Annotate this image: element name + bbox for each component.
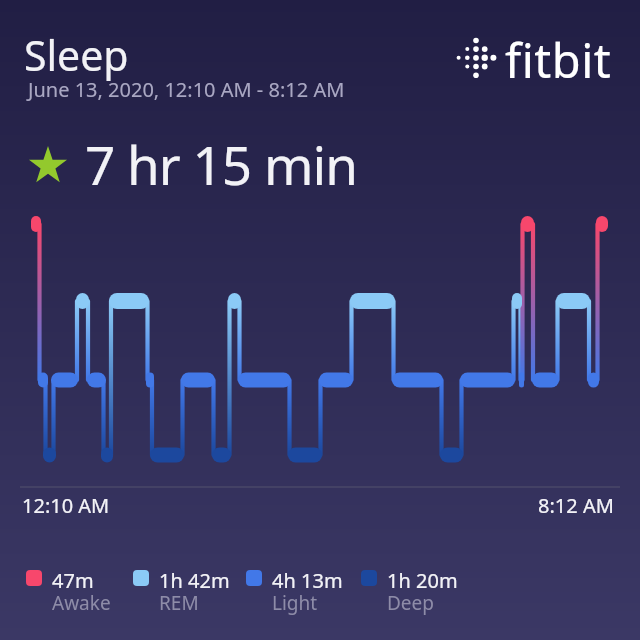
staticText: REM xyxy=(159,590,199,616)
button[interactable]: 1h 20m xyxy=(361,566,466,614)
button[interactable]: 47m xyxy=(26,566,131,614)
staticText: Sleep xyxy=(24,27,129,83)
staticText: 12:10 AM xyxy=(22,492,110,519)
button[interactable]: 4h 13m xyxy=(246,566,351,614)
staticText: Light xyxy=(272,590,318,616)
staticText: 7 hr 15 min xyxy=(85,128,357,194)
staticText: fitbit xyxy=(505,28,612,88)
staticText: 1h 20m xyxy=(387,567,458,594)
staticText: 8:12 AM xyxy=(538,492,614,519)
staticText: 47m xyxy=(52,567,94,594)
staticText: 4h 13m xyxy=(272,567,343,594)
button[interactable]: 7 hr 15 min xyxy=(24,128,394,194)
staticText: 1h 42m xyxy=(159,567,230,594)
button[interactable]: 1h 42m xyxy=(133,566,238,614)
staticText: Deep xyxy=(387,590,434,616)
button[interactable]: fitbit xyxy=(450,28,620,88)
staticText: Awake xyxy=(52,590,111,616)
staticText: June 13, 2020, 12:10 AM - 8:12 AM xyxy=(28,76,345,103)
